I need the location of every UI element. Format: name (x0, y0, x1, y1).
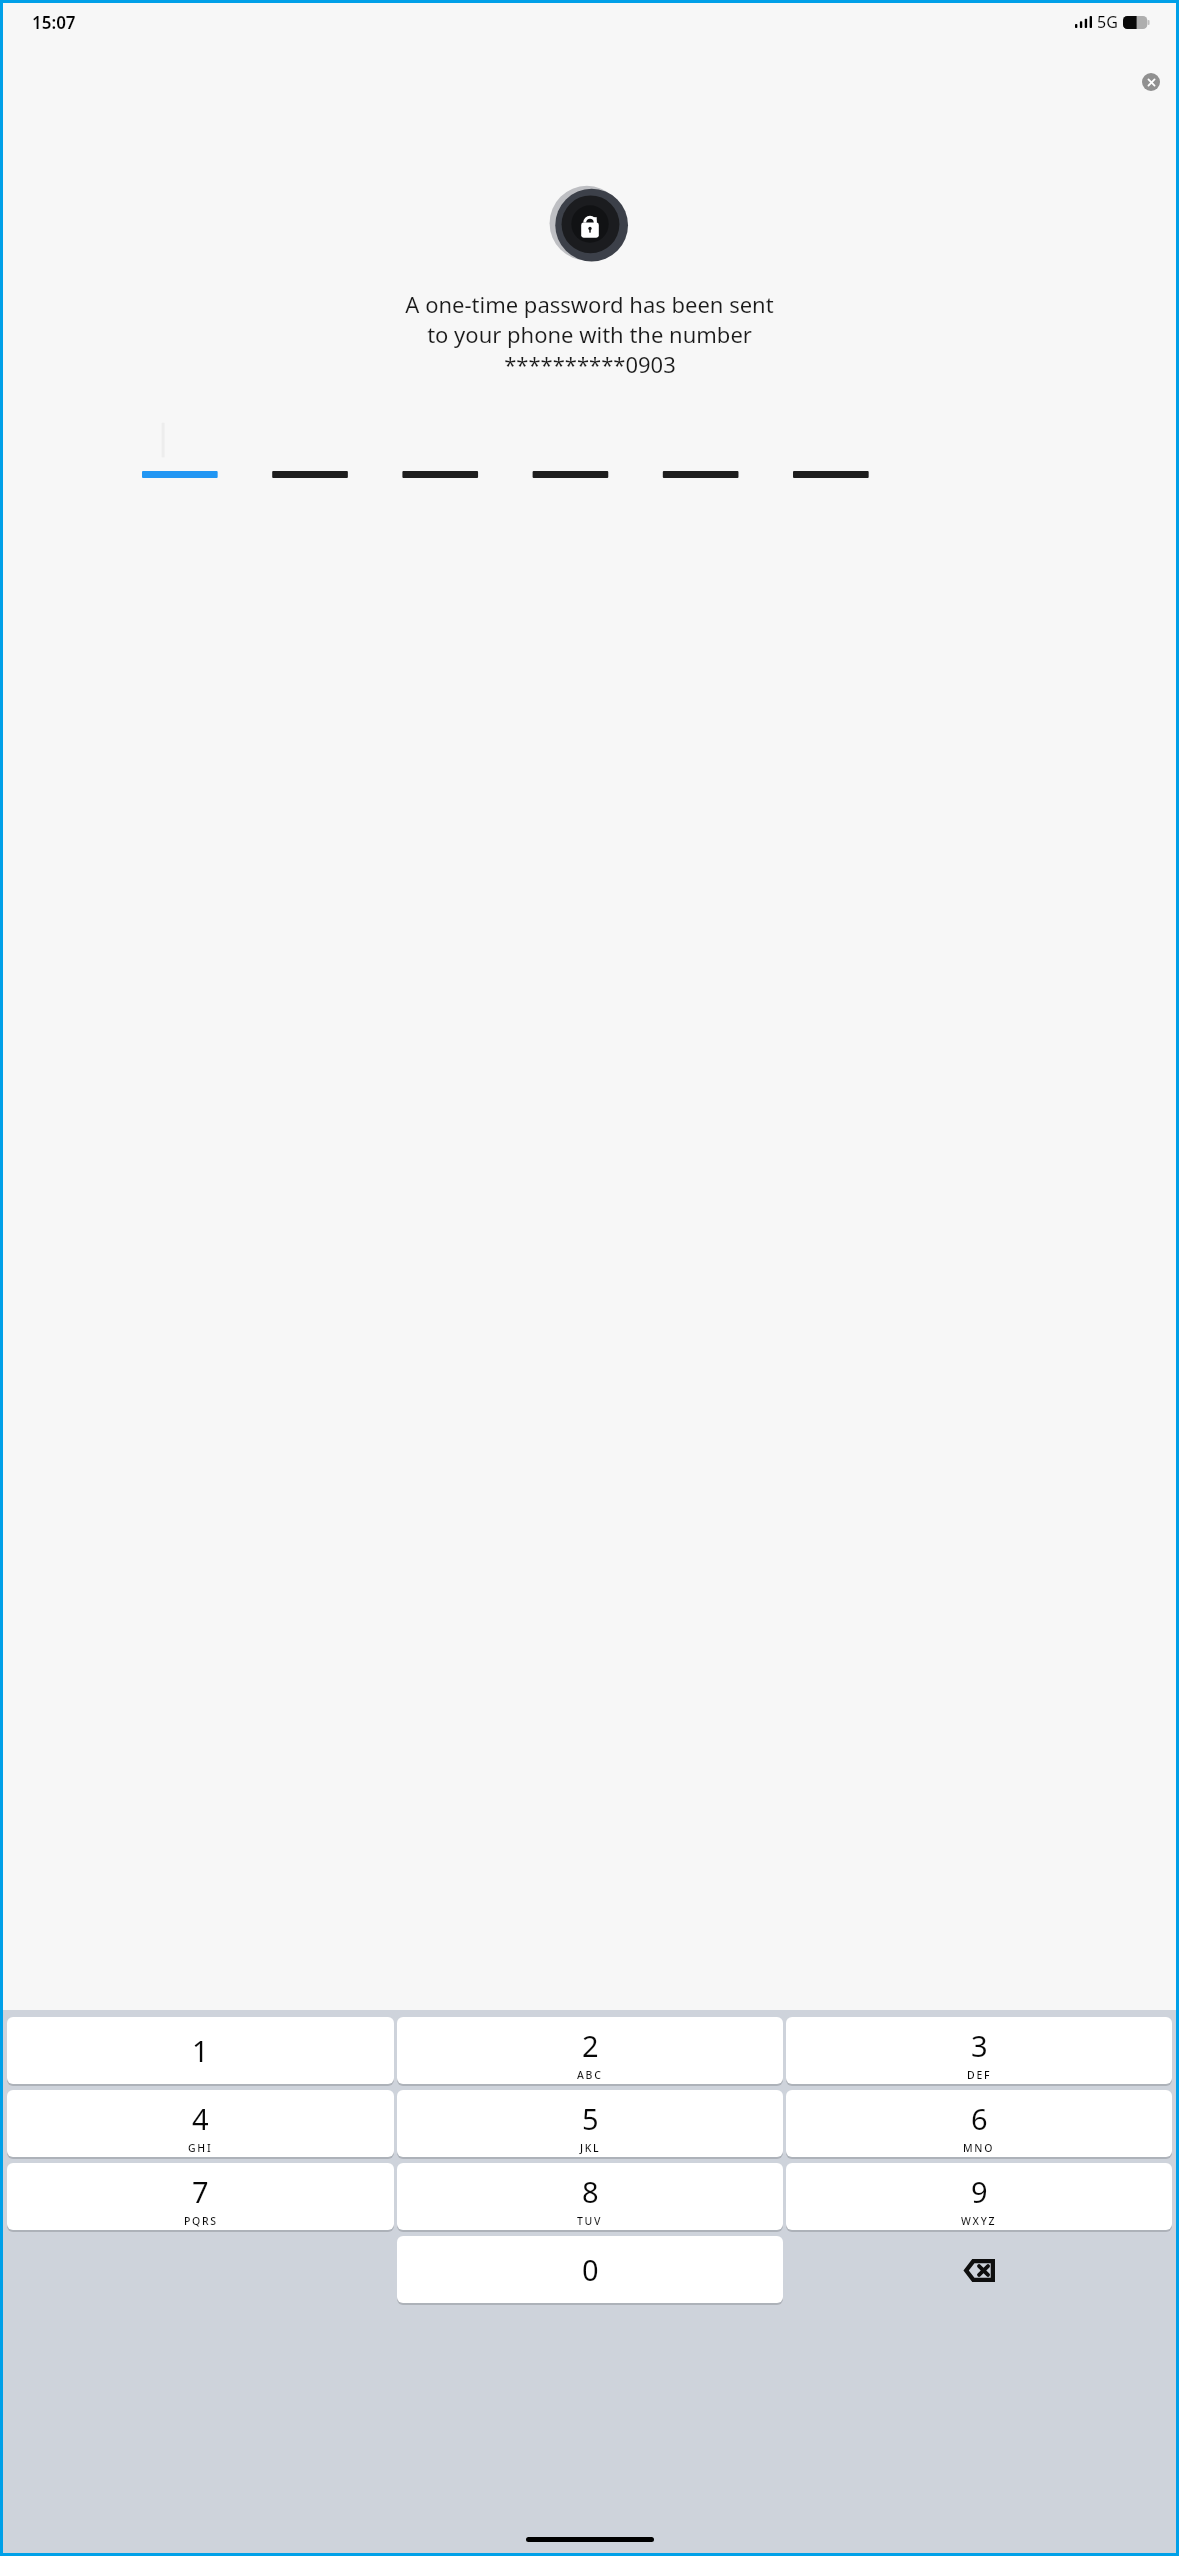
staticText: 0 (582, 2250, 599, 2289)
staticText: DEF (967, 2068, 992, 2082)
staticText: 8 (582, 2172, 599, 2211)
button[interactable]: 6 (786, 2090, 1172, 2157)
button[interactable]: 1 (7, 2017, 394, 2084)
staticText: 3 (971, 2026, 988, 2065)
staticText: PQRS (184, 2214, 218, 2228)
button[interactable]: Close (1142, 73, 1160, 91)
button[interactable] (3, 419, 1176, 481)
button[interactable]: 3 (786, 2017, 1172, 2084)
staticText: JKL (580, 2141, 601, 2155)
button[interactable]: 8 (397, 2163, 783, 2230)
staticText: 15:07 (32, 11, 76, 34)
staticText: 2 (582, 2026, 599, 2065)
staticText: 7 (192, 2172, 209, 2211)
staticText: ABC (577, 2068, 603, 2082)
button[interactable]: 5 (397, 2090, 783, 2157)
button[interactable]: 4 (7, 2090, 394, 2157)
button[interactable]: 7 (7, 2163, 394, 2230)
staticText: to your phone with the number (427, 319, 752, 349)
button[interactable]: 0 (397, 2236, 783, 2303)
staticText: TUV (577, 2214, 603, 2228)
staticText: 5 (582, 2099, 599, 2138)
button[interactable]: 9 (786, 2163, 1172, 2230)
staticText: A one-time password has been sent (405, 289, 774, 319)
button[interactable]: Backspace (786, 2234, 1172, 2307)
button[interactable]: 2 (397, 2017, 783, 2084)
staticText: GHI (188, 2141, 213, 2155)
staticText: 5G (1097, 11, 1118, 33)
staticText: 9 (971, 2172, 988, 2211)
staticText: 4 (192, 2099, 209, 2138)
staticText: 1 (192, 2031, 209, 2070)
staticText: **********0903 (504, 349, 676, 379)
staticText: MNO (963, 2141, 995, 2155)
staticText: 6 (971, 2099, 988, 2138)
staticText: WXYZ (961, 2214, 997, 2228)
